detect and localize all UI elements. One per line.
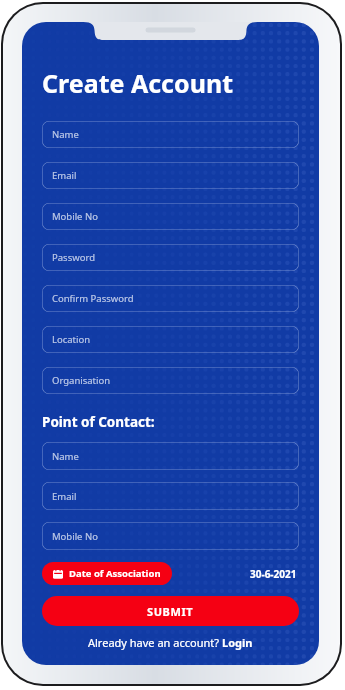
- button[interactable]: Organisation: [42, 367, 299, 394]
- staticText: Password: [52, 251, 95, 264]
- button[interactable]: Email: [42, 482, 299, 510]
- staticText: SUBMIT: [147, 604, 194, 619]
- staticText: Location: [52, 333, 91, 346]
- button[interactable]: Mobile No: [42, 522, 299, 550]
- staticText: Name: [52, 450, 79, 463]
- button[interactable]: Password: [42, 244, 299, 271]
- button[interactable]: Confirm Password: [42, 285, 299, 312]
- staticText: Create Account: [42, 66, 233, 100]
- button[interactable]: Date of Association: [42, 562, 172, 585]
- staticText: Mobile No: [52, 530, 98, 543]
- staticText: Name: [52, 128, 79, 141]
- staticText: Already have an account?: [88, 635, 222, 650]
- button[interactable]: SUBMIT: [42, 596, 299, 626]
- staticText: Point of Contact:: [42, 413, 155, 431]
- staticText: Organisation: [52, 374, 111, 387]
- button[interactable]: Login: [222, 635, 253, 650]
- staticText: Mobile No: [52, 210, 98, 223]
- staticText: Confirm Password: [52, 292, 134, 305]
- button[interactable]: 30-6-2021: [250, 567, 299, 581]
- button[interactable]: Name: [42, 442, 299, 470]
- button[interactable]: Email: [42, 162, 299, 189]
- button[interactable]: Mobile No: [42, 203, 299, 230]
- staticText: Date of Association: [69, 567, 161, 580]
- staticText: Email: [52, 169, 77, 182]
- button[interactable]: Name: [42, 121, 299, 148]
- button[interactable]: Location: [42, 326, 299, 353]
- staticText: Email: [52, 490, 77, 503]
